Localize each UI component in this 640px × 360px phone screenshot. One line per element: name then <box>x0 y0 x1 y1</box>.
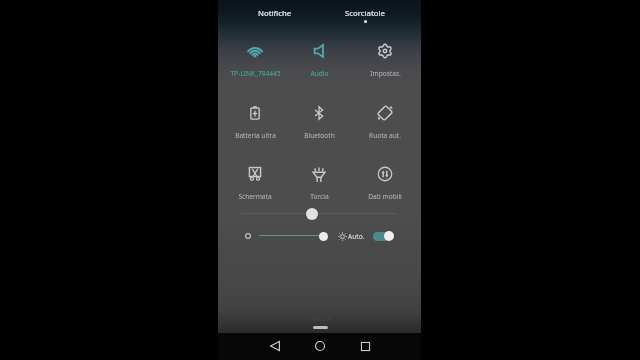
staticText: TP-LINK_784445 <box>230 69 281 78</box>
button[interactable]: Bluetooth <box>287 97 351 139</box>
button[interactable]: Close panel <box>313 326 328 329</box>
button[interactable]: Impostaz. <box>353 35 417 77</box>
staticText: Schermata <box>238 192 272 201</box>
button[interactable]: Ruota aut. <box>353 97 417 139</box>
button[interactable]: Brightness slider <box>319 232 328 241</box>
staticText: Auto. <box>348 232 365 241</box>
staticText: Ruota aut. <box>369 131 401 140</box>
staticText: CANCELLA <box>309 316 332 322</box>
staticText: Torcia <box>310 192 329 201</box>
staticText: Batteria ultra <box>235 131 276 140</box>
button[interactable]: Torcia <box>287 158 351 200</box>
button[interactable]: Home <box>308 334 332 358</box>
staticText: Scorciatoie <box>345 8 385 19</box>
staticText: Dati mobili <box>368 192 402 201</box>
button[interactable]: Notifiche <box>230 0 320 26</box>
staticText: Impostaz. <box>370 69 401 78</box>
button[interactable]: Audio <box>287 35 351 77</box>
button[interactable]: Auto brightness <box>373 231 394 241</box>
button[interactable]: Schermata <box>223 158 287 200</box>
staticText: Bluetooth <box>304 131 335 140</box>
button[interactable]: Scorciatoie <box>320 0 410 26</box>
button[interactable]: Recents <box>353 334 377 358</box>
button[interactable]: Back <box>263 334 287 358</box>
staticText: Audio <box>310 69 329 78</box>
button[interactable]: TP-LINK_784445 <box>223 35 287 77</box>
staticText: Notifiche <box>258 8 292 19</box>
button[interactable]: Dati mobili <box>353 158 417 200</box>
button[interactable]: Batteria ultra <box>223 97 287 139</box>
button[interactable]: Expand panel <box>306 208 318 220</box>
